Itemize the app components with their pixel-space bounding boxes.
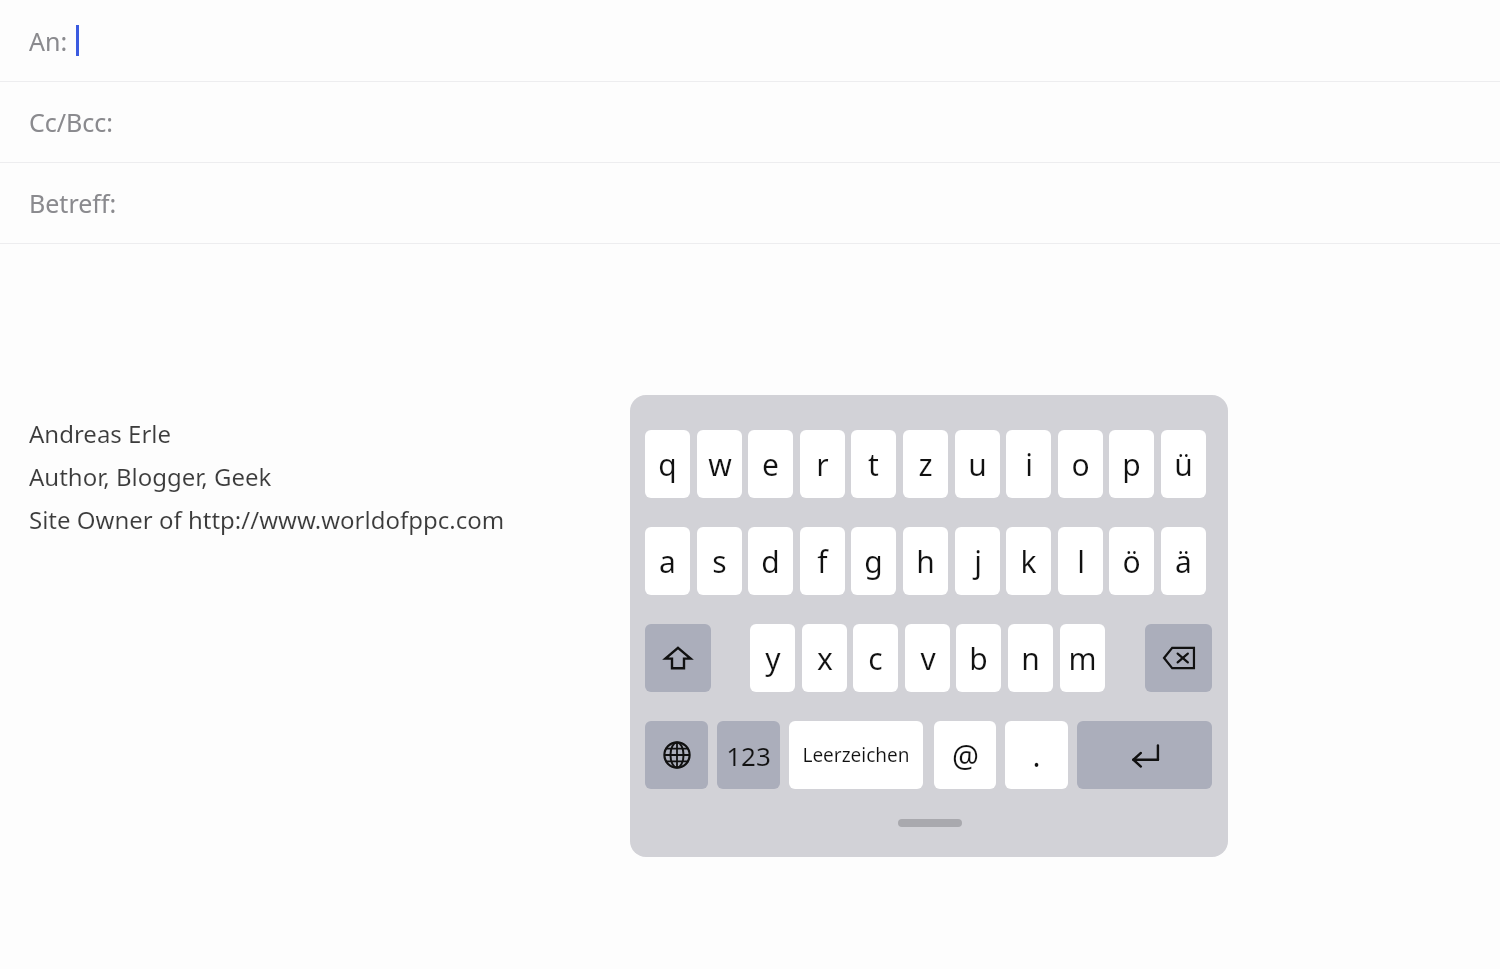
button[interactable]: d: [748, 527, 793, 595]
staticText: y: [765, 638, 781, 679]
staticText: k: [1020, 541, 1037, 582]
button[interactable]: b: [956, 624, 1001, 692]
button[interactable]: n: [1008, 624, 1053, 692]
button[interactable]: t: [851, 430, 896, 498]
button[interactable]: l: [1058, 527, 1103, 595]
staticText: j: [974, 541, 982, 582]
staticText: r: [816, 444, 829, 485]
staticText: Betreff:: [29, 186, 117, 220]
button[interactable]: p: [1109, 430, 1154, 498]
button[interactable]: ü: [1161, 430, 1206, 498]
staticText: Andreas Erle: [29, 417, 172, 450]
staticText: ü: [1174, 444, 1193, 485]
staticText: .: [1032, 735, 1041, 776]
button[interactable]: x: [802, 624, 847, 692]
button[interactable]: Cc/Bcc:: [0, 82, 1500, 162]
button[interactable]: Change language: [645, 721, 708, 789]
staticText: Author, Blogger, Geek: [29, 460, 272, 493]
button[interactable]: An:: [0, 0, 1500, 81]
button[interactable]: Backspace: [1145, 624, 1212, 692]
staticText: p: [1122, 444, 1141, 485]
staticText: z: [918, 444, 933, 485]
button[interactable]: ö: [1109, 527, 1154, 595]
staticText: ä: [1175, 541, 1192, 582]
staticText: b: [969, 638, 988, 679]
staticText: a: [659, 541, 676, 582]
button[interactable]: @: [934, 721, 996, 789]
button[interactable]: j: [955, 527, 1000, 595]
button[interactable]: k: [1006, 527, 1051, 595]
button[interactable]: Betreff:: [0, 163, 1500, 243]
staticText: h: [916, 541, 935, 582]
staticText: t: [868, 444, 879, 485]
staticText: q: [658, 444, 677, 485]
staticText: s: [712, 541, 727, 582]
button[interactable]: g: [851, 527, 896, 595]
button[interactable]: c: [853, 624, 898, 692]
staticText: u: [968, 444, 987, 485]
staticText: v: [920, 638, 936, 679]
staticText: o: [1071, 444, 1090, 485]
staticText: l: [1077, 541, 1085, 582]
button[interactable]: ä: [1161, 527, 1206, 595]
staticText: w: [708, 444, 732, 485]
staticText: d: [761, 541, 780, 582]
staticText: c: [868, 638, 883, 679]
button[interactable]: h: [903, 527, 948, 595]
staticText: e: [762, 444, 779, 485]
button[interactable]: e: [748, 430, 793, 498]
button[interactable]: .: [1005, 721, 1068, 789]
button[interactable]: v: [905, 624, 950, 692]
staticText: Site Owner of http://www.worldofppc.com: [29, 503, 505, 536]
button[interactable]: w: [697, 430, 742, 498]
button[interactable]: y: [750, 624, 795, 692]
staticText: f: [817, 541, 828, 582]
button[interactable]: m: [1060, 624, 1105, 692]
button[interactable]: a: [645, 527, 690, 595]
button[interactable]: 123: [717, 721, 780, 789]
staticText: Cc/Bcc:: [29, 105, 114, 139]
button[interactable]: Leerzeichen: [789, 721, 923, 789]
staticText: ö: [1122, 541, 1141, 582]
button[interactable]: u: [955, 430, 1000, 498]
staticText: n: [1021, 638, 1040, 679]
button[interactable]: o: [1058, 430, 1103, 498]
staticText: An:: [29, 24, 68, 58]
button[interactable]: f: [800, 527, 845, 595]
staticText: g: [864, 541, 883, 582]
button[interactable]: Shift: [645, 624, 711, 692]
button[interactable]: i: [1006, 430, 1051, 498]
button[interactable]: Enter: [1077, 721, 1212, 789]
staticText: 123: [726, 738, 771, 773]
button[interactable]: r: [800, 430, 845, 498]
staticText: @: [952, 735, 979, 776]
button[interactable]: q: [645, 430, 690, 498]
button[interactable]: s: [697, 527, 742, 595]
staticText: x: [817, 638, 833, 679]
staticText: Leerzeichen: [802, 742, 910, 768]
button[interactable]: z: [903, 430, 948, 498]
staticText: i: [1025, 444, 1033, 485]
staticText: m: [1068, 638, 1097, 679]
